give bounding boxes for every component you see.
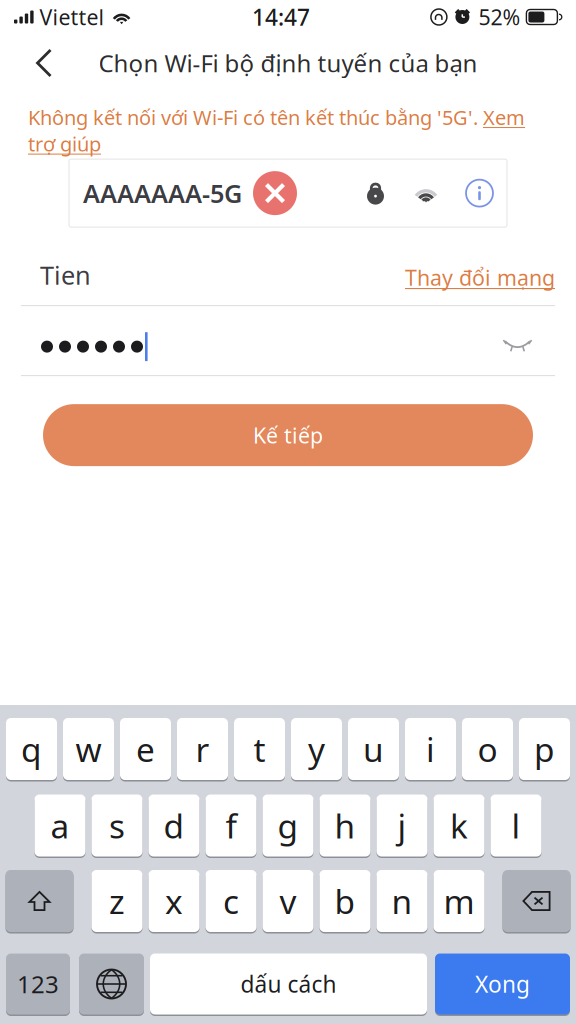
staticText: u bbox=[363, 727, 384, 771]
button[interactable]: Delete bbox=[502, 870, 570, 933]
button[interactable]: g bbox=[262, 794, 313, 858]
staticText: dấu cách bbox=[240, 969, 336, 999]
staticText: i bbox=[426, 727, 435, 771]
button[interactable]: Kế tiếp bbox=[43, 404, 533, 466]
button[interactable]: d bbox=[148, 794, 199, 858]
staticText: Xong bbox=[475, 969, 530, 999]
button[interactable]: z bbox=[91, 870, 142, 933]
staticText: f bbox=[225, 803, 236, 848]
staticText: g bbox=[277, 803, 298, 848]
staticText: o bbox=[477, 727, 497, 771]
staticText: h bbox=[334, 803, 355, 848]
staticText: x bbox=[165, 879, 183, 923]
staticText: k bbox=[450, 803, 468, 848]
staticText: Chọn Wi-Fi bộ định tuyến của bạn bbox=[98, 47, 477, 79]
button[interactable]: dấu cách bbox=[150, 953, 427, 1016]
button[interactable]: r bbox=[177, 718, 228, 781]
button[interactable]: c bbox=[205, 870, 256, 933]
button[interactable]: v bbox=[262, 870, 313, 933]
staticText: q bbox=[21, 727, 42, 771]
button[interactable]: y bbox=[291, 718, 342, 781]
button[interactable]: f bbox=[205, 794, 256, 858]
staticText: a bbox=[50, 803, 69, 848]
button[interactable]: o bbox=[462, 718, 513, 781]
staticText: m bbox=[443, 879, 474, 923]
button[interactable]: e bbox=[120, 718, 171, 781]
button[interactable]: i bbox=[405, 718, 456, 781]
button[interactable]: Show password bbox=[503, 340, 532, 354]
staticText: l bbox=[511, 803, 520, 848]
button[interactable]: p bbox=[519, 718, 570, 781]
button[interactable]: q bbox=[6, 718, 57, 781]
button[interactable]: j bbox=[376, 794, 427, 858]
staticText: t bbox=[253, 727, 265, 771]
button[interactable]: w bbox=[63, 718, 114, 781]
staticText: 123 bbox=[17, 968, 59, 1000]
staticText: Thay đổi mạng bbox=[405, 263, 555, 292]
staticText: j bbox=[397, 803, 406, 848]
staticText: y bbox=[308, 727, 325, 771]
staticText: Kế tiếp bbox=[253, 421, 323, 449]
button[interactable]: u bbox=[348, 718, 399, 781]
staticText: 52% bbox=[478, 3, 520, 31]
staticText: d bbox=[163, 803, 184, 848]
staticText: z bbox=[109, 879, 125, 923]
staticText: n bbox=[391, 879, 412, 923]
button[interactable]: a bbox=[34, 794, 85, 858]
button[interactable]: m bbox=[433, 870, 484, 933]
button[interactable]: Shift bbox=[5, 870, 73, 933]
button[interactable]: h bbox=[319, 794, 370, 858]
button[interactable]: x bbox=[148, 870, 199, 933]
button[interactable]: s bbox=[91, 794, 142, 858]
staticText: b bbox=[334, 879, 355, 923]
button[interactable]: k bbox=[433, 794, 484, 858]
button[interactable]: t bbox=[234, 718, 285, 781]
button[interactable]: Next keyboard bbox=[79, 953, 144, 1016]
staticText: c bbox=[223, 879, 239, 923]
staticText: v bbox=[279, 879, 296, 923]
staticText: e bbox=[136, 727, 155, 771]
button[interactable]: Thay đổi mạng bbox=[405, 263, 555, 292]
staticText: Tien bbox=[40, 258, 91, 292]
staticText: r bbox=[195, 727, 209, 771]
staticText: Viettel bbox=[40, 3, 105, 31]
staticText: Không kết nối với Wi-Fi có tên kết thúc … bbox=[28, 104, 525, 157]
button[interactable]: b bbox=[319, 870, 370, 933]
button[interactable]: n bbox=[376, 870, 427, 933]
button[interactable]: Back bbox=[18, 37, 70, 89]
staticText: AAAAAAA-5G bbox=[83, 176, 242, 210]
staticText: p bbox=[534, 727, 555, 771]
staticText: s bbox=[109, 803, 125, 848]
staticText: 14:47 bbox=[252, 2, 310, 32]
button[interactable]: 123 bbox=[6, 953, 70, 1016]
button[interactable]: l bbox=[490, 794, 541, 858]
button[interactable]: Xong bbox=[435, 953, 570, 1016]
staticText: w bbox=[75, 727, 101, 771]
